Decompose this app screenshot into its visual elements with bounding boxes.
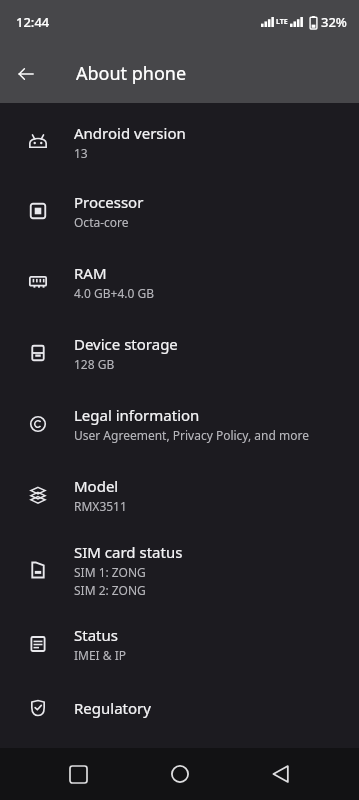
staticText: About phone (76, 61, 187, 86)
staticText: 128 GB (74, 356, 115, 372)
button[interactable]: Model (0, 459, 359, 530)
staticText: Model (74, 476, 119, 496)
staticText: Legal information (74, 405, 200, 425)
button[interactable]: SIM card status (0, 530, 359, 610)
staticText: Android version (74, 123, 186, 143)
staticText: RAM (74, 263, 107, 283)
staticText: SIM card status (74, 542, 183, 562)
staticText: SIM 1: ZONG (74, 564, 146, 580)
button[interactable]: RAM (0, 246, 359, 317)
staticText: IMEI & IP (74, 647, 127, 663)
button[interactable]: Processor (0, 175, 359, 246)
staticText: RMX3511 (74, 498, 127, 514)
staticText: Octa-core (74, 214, 129, 230)
button[interactable]: Recents (54, 750, 102, 798)
button[interactable]: Legal information (0, 388, 359, 459)
staticText: 32% (321, 13, 347, 31)
button[interactable]: Back (0, 48, 52, 100)
button[interactable]: Regulatory (0, 678, 359, 738)
staticText: Status (74, 625, 118, 645)
staticText: User Agreement, Privacy Policy, and more (74, 427, 309, 443)
staticText: 4.0 GB+4.0 GB (74, 285, 155, 301)
button[interactable]: Android version (0, 109, 359, 175)
staticText: 13 (74, 145, 88, 161)
button[interactable]: Back (257, 750, 305, 798)
staticText: 12:44 (16, 13, 50, 31)
staticText: LTE (276, 17, 288, 27)
button[interactable]: Device storage (0, 317, 359, 388)
button[interactable]: Status (0, 610, 359, 678)
staticText: Processor (74, 192, 144, 212)
staticText: Regulatory (74, 698, 151, 718)
staticText: SIM 2: ZONG (74, 582, 146, 598)
button[interactable]: Home (156, 750, 204, 798)
staticText: Device storage (74, 334, 178, 354)
